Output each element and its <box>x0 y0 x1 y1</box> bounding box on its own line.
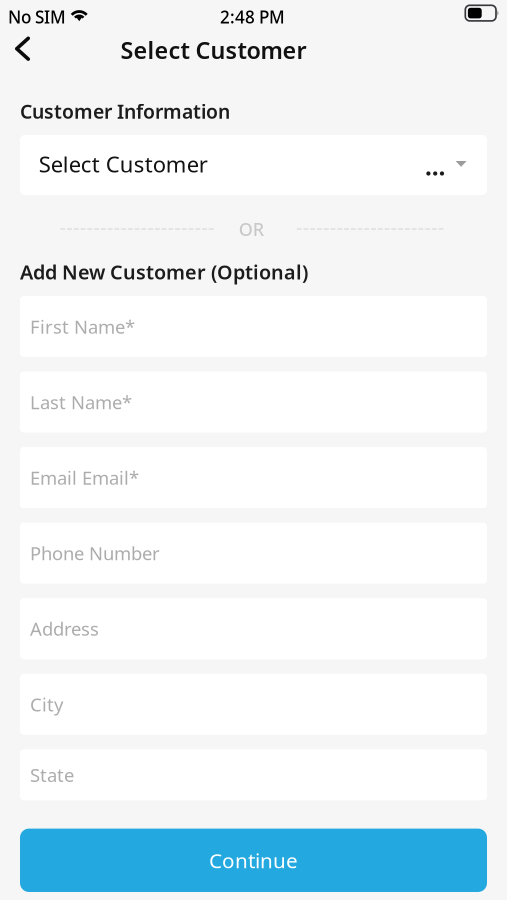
staticText: Select Customer <box>120 34 306 66</box>
button[interactable]: Email Email* <box>20 447 487 508</box>
button[interactable]: Phone Number <box>20 523 487 584</box>
staticText: Email Email* <box>30 465 139 490</box>
button[interactable]: City <box>20 674 487 735</box>
staticText: Add New Customer (Optional) <box>20 258 308 285</box>
button[interactable]: Last Name* <box>20 372 487 433</box>
button[interactable]: Select Customer <box>20 135 487 195</box>
staticText: Select Customer <box>39 149 208 179</box>
staticText: Continue <box>209 846 298 874</box>
staticText: 2:48 PM <box>220 5 285 28</box>
button[interactable]: Continue <box>20 829 487 892</box>
staticText: OR <box>239 217 264 241</box>
staticText: State <box>30 762 74 787</box>
staticText: First Name* <box>30 314 135 339</box>
button[interactable]: First Name* <box>20 296 487 357</box>
staticText: Last Name* <box>30 389 132 415</box>
button[interactable]: State <box>20 749 487 800</box>
staticText: Phone Number <box>30 541 160 566</box>
button[interactable]: Back <box>0 26 45 71</box>
staticText: City <box>30 692 63 717</box>
staticText: Address <box>30 616 99 641</box>
staticText: Customer Information <box>20 98 230 124</box>
staticText: No SIM <box>8 5 66 28</box>
button[interactable]: Address <box>20 598 487 659</box>
